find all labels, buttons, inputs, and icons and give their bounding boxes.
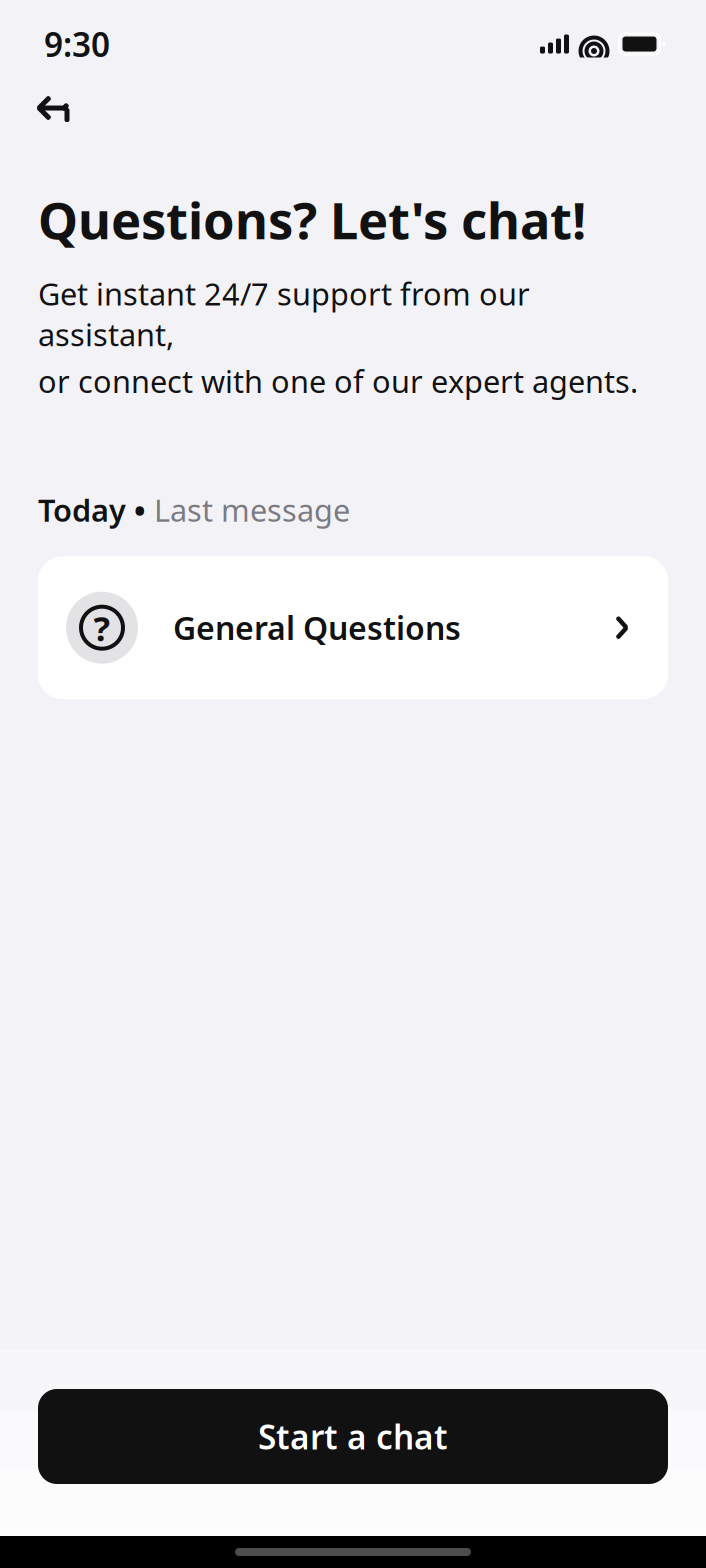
button[interactable]: Start a chat xyxy=(38,1389,668,1484)
staticText: 9:30 xyxy=(44,22,110,66)
button[interactable]: Back xyxy=(30,90,86,138)
staticText: Start a chat xyxy=(258,1414,448,1459)
staticText: Questions? Let's chat! xyxy=(38,186,586,253)
staticText: ? xyxy=(93,605,110,651)
staticText: Get instant 24/7 support from our assist… xyxy=(38,273,530,355)
staticText: General Questions xyxy=(173,606,461,649)
staticText: or connect with one of our expert agents… xyxy=(38,361,638,401)
button[interactable]: ? xyxy=(38,556,668,699)
staticText: Today xyxy=(38,489,126,530)
staticText: • xyxy=(134,489,146,530)
staticText: Last message xyxy=(154,489,350,530)
